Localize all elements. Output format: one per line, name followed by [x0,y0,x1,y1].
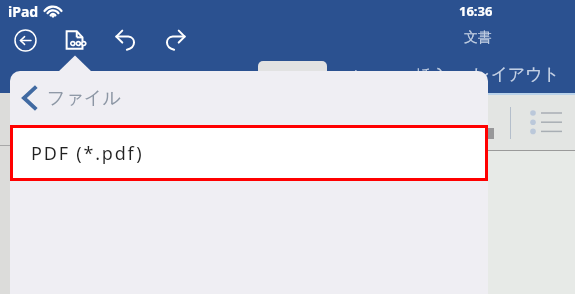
button[interactable]: 挿入 [415,66,449,87]
staticText: iPad [8,2,39,21]
staticText: メニュー [343,66,413,87]
button[interactable]: PDF (*.pdf) [13,128,485,178]
button[interactable]: Undo [108,23,142,57]
button[interactable]: メニュー [343,66,413,87]
button[interactable]: File [58,23,92,57]
staticText: PDF (*.pdf) [31,141,144,166]
button[interactable]: Back [8,23,42,57]
button[interactable]: Redo [158,23,192,57]
staticText: 16:36 [459,2,493,20]
staticText: 挿入 [415,66,449,87]
button[interactable]: レイアウト [473,64,560,85]
staticText: ファイル [47,87,121,110]
button[interactable]: Bulleted list [527,106,567,138]
button[interactable]: ファイル [10,71,488,125]
staticText: 文書 [464,29,492,47]
button[interactable]: ホーム [258,61,327,94]
staticText: レイアウト [473,64,560,85]
